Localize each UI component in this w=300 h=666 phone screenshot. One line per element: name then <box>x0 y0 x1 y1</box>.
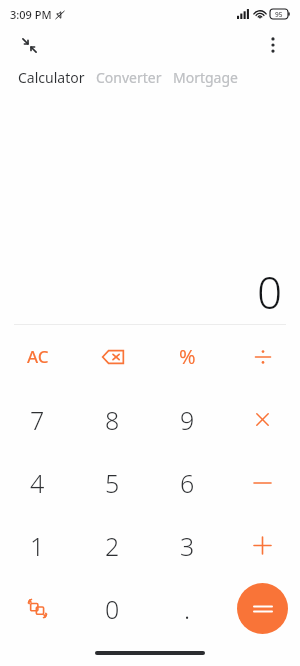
staticText: Converter <box>96 68 162 87</box>
button[interactable]: Collapse <box>14 30 44 60</box>
staticText: 8 <box>105 403 120 437</box>
button[interactable]: Multiply <box>225 388 300 451</box>
staticText: 0 <box>105 592 120 626</box>
staticText: . <box>184 592 191 626</box>
button[interactable]: 9 <box>150 388 225 451</box>
button[interactable]: Equals <box>237 583 288 634</box>
button[interactable]: 1 <box>0 514 75 577</box>
staticText: 1 <box>30 529 45 563</box>
staticText: 3:09 PM <box>10 7 52 22</box>
button[interactable]: . <box>150 577 225 640</box>
button[interactable]: 7 <box>0 388 75 451</box>
button[interactable]: 2 <box>75 514 150 577</box>
staticText: % <box>179 343 196 370</box>
staticText: Mortgage <box>173 68 238 87</box>
staticText: 0 <box>256 262 282 318</box>
button[interactable]: Converter <box>96 68 162 87</box>
staticText: 3 <box>180 529 195 563</box>
button[interactable]: 3 <box>150 514 225 577</box>
staticText: 9 <box>180 403 195 437</box>
button[interactable]: More options <box>258 30 288 60</box>
button[interactable]: Plus <box>225 514 300 577</box>
button[interactable]: 0 <box>75 577 150 640</box>
button[interactable]: Backspace <box>75 325 150 388</box>
staticText: 6 <box>180 466 195 500</box>
button[interactable]: 4 <box>0 451 75 514</box>
staticText: AC <box>27 345 49 368</box>
button[interactable]: Mortgage <box>173 68 238 87</box>
button[interactable]: AC <box>0 325 75 388</box>
button[interactable]: Convert <box>0 577 75 640</box>
staticText: 7 <box>30 403 45 437</box>
staticText: 4 <box>30 466 45 500</box>
button[interactable]: 6 <box>150 451 225 514</box>
staticText: Calculator <box>18 68 85 87</box>
button[interactable]: Minus <box>225 451 300 514</box>
button[interactable]: Calculator <box>18 68 85 87</box>
button[interactable]: 8 <box>75 388 150 451</box>
button[interactable]: % <box>150 325 225 388</box>
staticText: 95 <box>275 10 283 19</box>
button[interactable]: 5 <box>75 451 150 514</box>
button[interactable]: Divide <box>225 325 300 388</box>
staticText: 5 <box>105 466 120 500</box>
staticText: 2 <box>105 529 120 563</box>
